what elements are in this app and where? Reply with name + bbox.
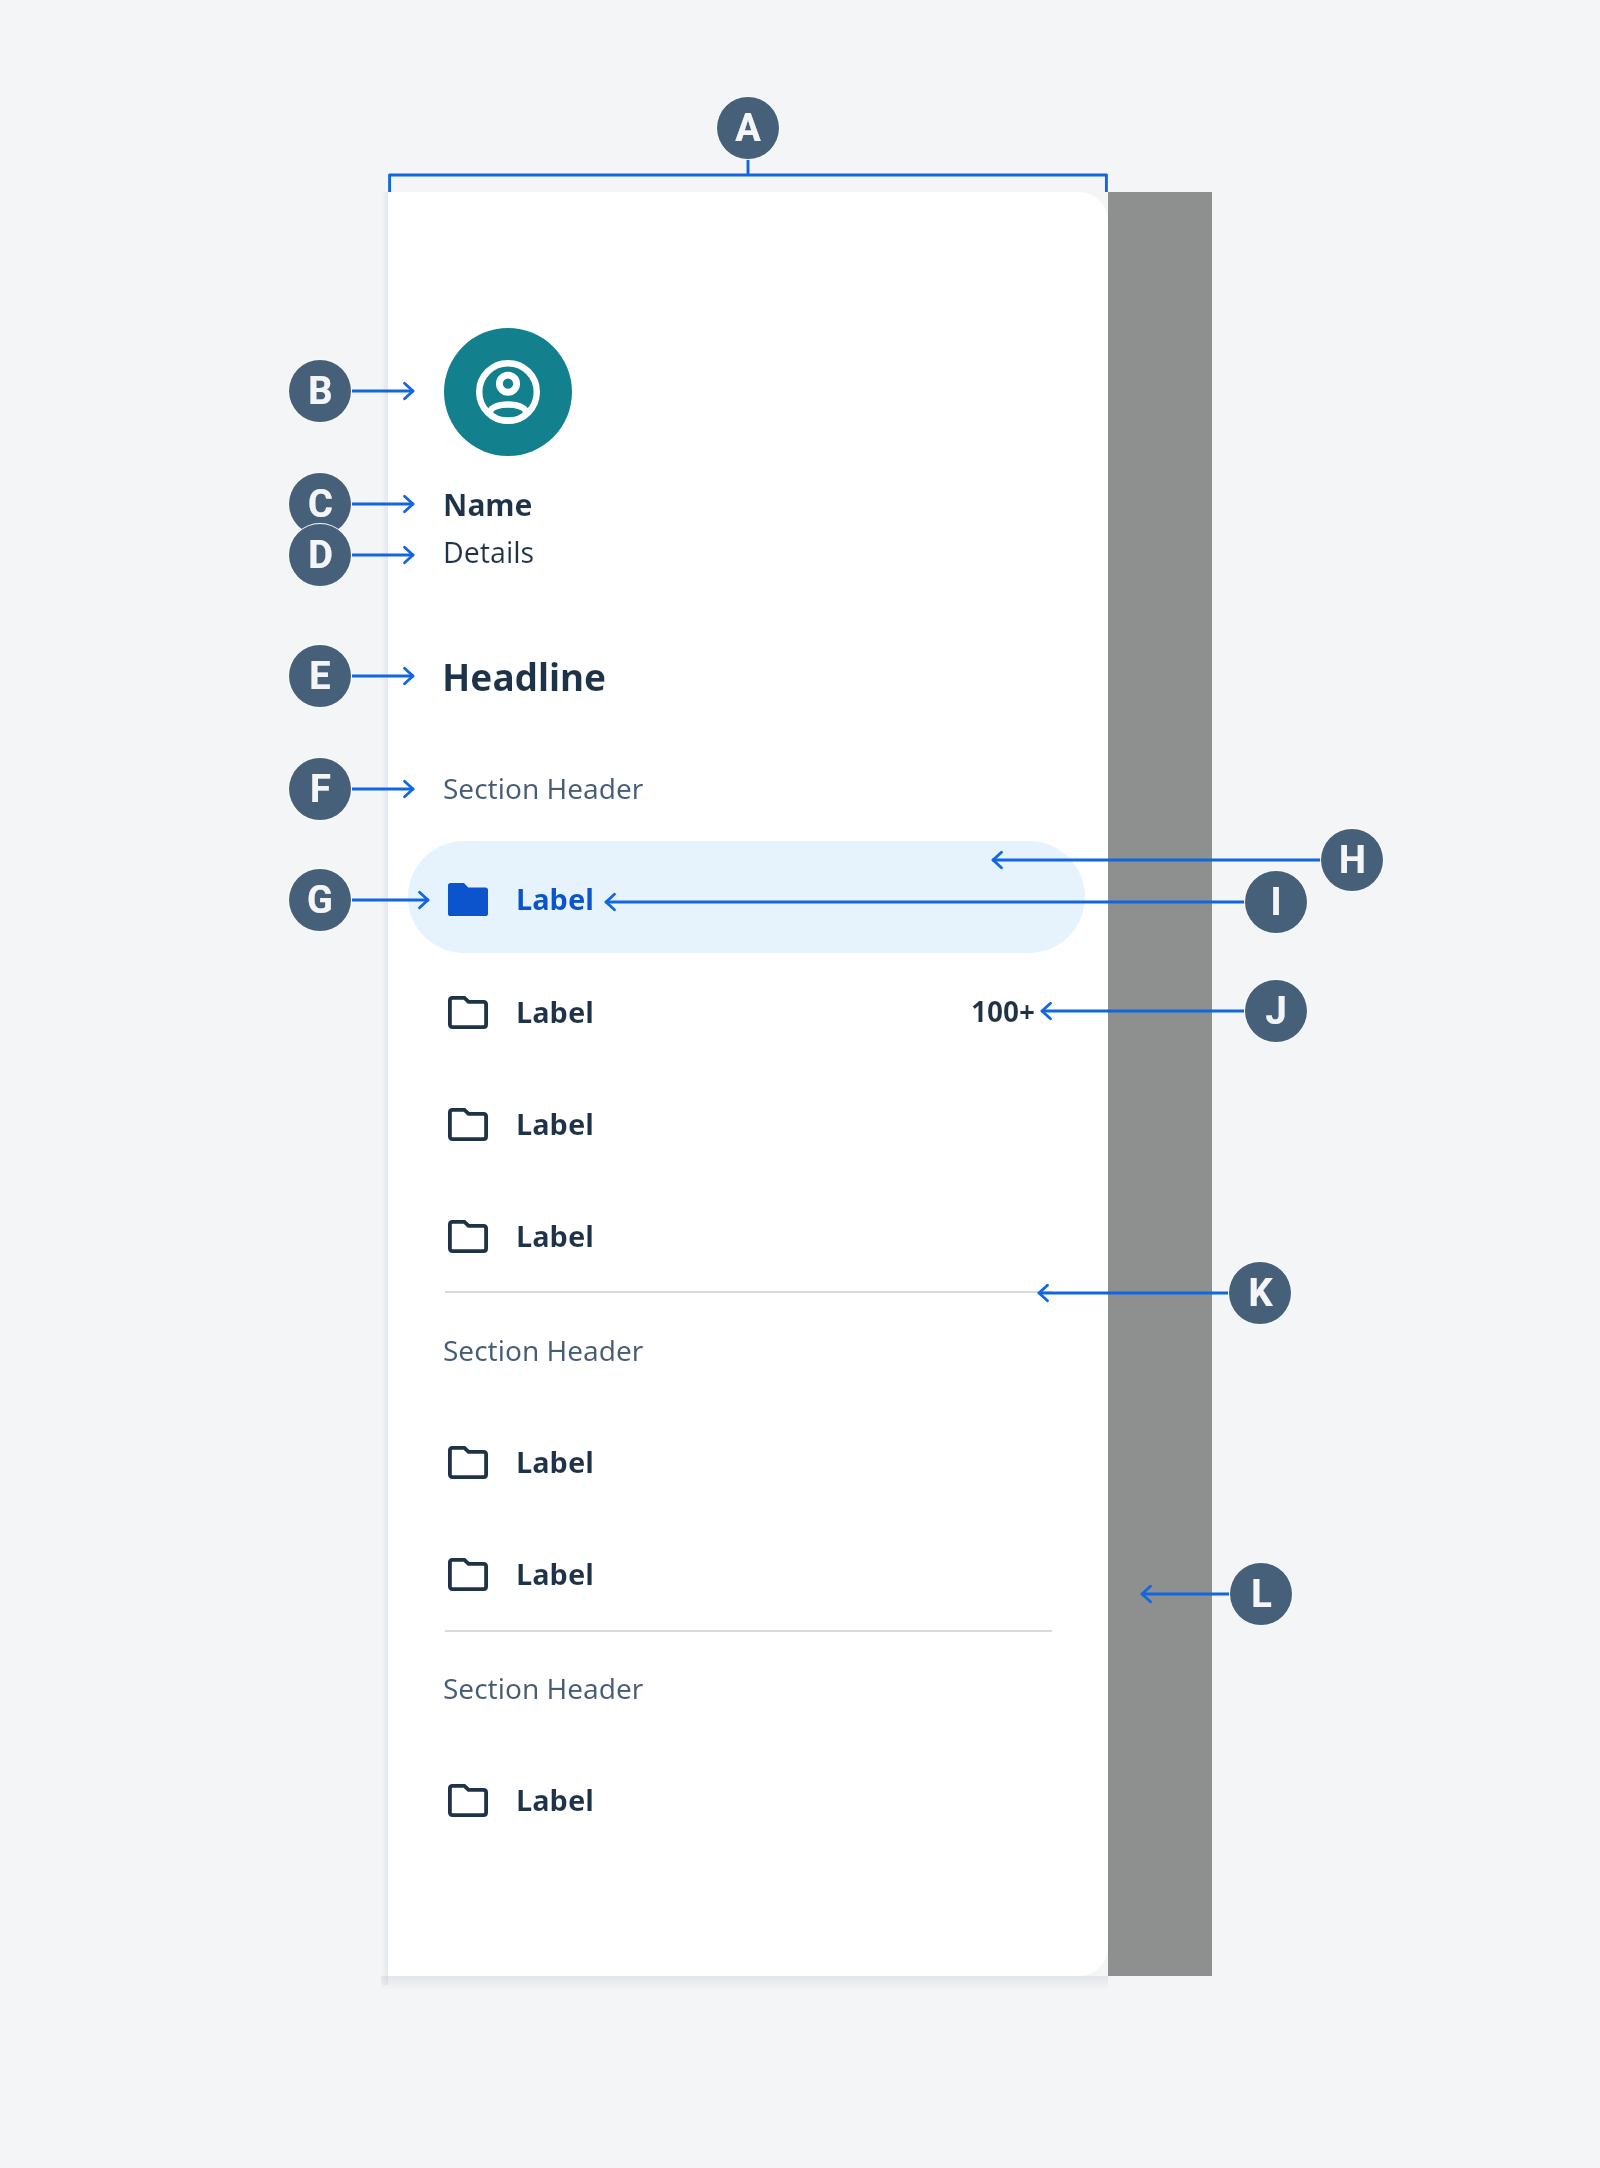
staticText: Label [516, 1442, 594, 1481]
staticText: 100+ [971, 992, 1036, 1030]
staticText: L [1251, 1572, 1272, 1617]
staticText: Label [516, 992, 594, 1031]
button[interactable]: Callout H [1320, 828, 1384, 892]
staticText: H [1339, 838, 1366, 883]
button[interactable]: Callout C [288, 472, 352, 536]
button[interactable]: Callout A [716, 96, 780, 160]
button[interactable]: Callout D [288, 523, 352, 587]
button[interactable]: Label [408, 1742, 1085, 1854]
button[interactable]: Callout I [1244, 870, 1308, 934]
button[interactable]: Callout E [288, 644, 352, 708]
staticText: Headline [442, 651, 607, 701]
staticText: B [308, 369, 333, 414]
staticText: F [310, 767, 331, 812]
staticText: Name [443, 484, 533, 525]
staticText: Section Header [443, 1669, 644, 1707]
staticText: D [308, 533, 333, 578]
button[interactable]: Label [408, 841, 1085, 953]
staticText: E [309, 654, 331, 699]
staticText: Section Header [443, 769, 644, 807]
staticText: Label [516, 1780, 594, 1819]
button[interactable]: Callout B [288, 359, 352, 423]
staticText: K [1248, 1271, 1273, 1316]
button[interactable]: Callout L [1229, 1562, 1293, 1626]
staticText: C [308, 482, 333, 527]
button[interactable]: Label [408, 1178, 1085, 1290]
staticText: Label [516, 879, 594, 918]
button[interactable]: Callout F [288, 757, 352, 821]
staticText: Label [516, 1216, 594, 1255]
staticText: A [735, 106, 761, 151]
button[interactable]: Callout J [1244, 979, 1308, 1043]
staticText: I [1270, 880, 1282, 925]
staticText: Section Header [443, 1331, 644, 1369]
staticText: Label [516, 1104, 594, 1143]
button[interactable]: Account [444, 328, 572, 456]
button[interactable]: Label [408, 954, 1085, 1066]
staticText: G [307, 878, 333, 923]
button[interactable]: Callout K [1228, 1261, 1292, 1325]
button[interactable]: Label [408, 1066, 1085, 1178]
button[interactable]: Label [408, 1404, 1085, 1516]
staticText: J [1265, 989, 1287, 1034]
staticText: Label [516, 1554, 594, 1593]
button[interactable]: Callout G [288, 868, 352, 932]
button[interactable]: Label [408, 1516, 1085, 1628]
staticText: Details [443, 533, 535, 572]
